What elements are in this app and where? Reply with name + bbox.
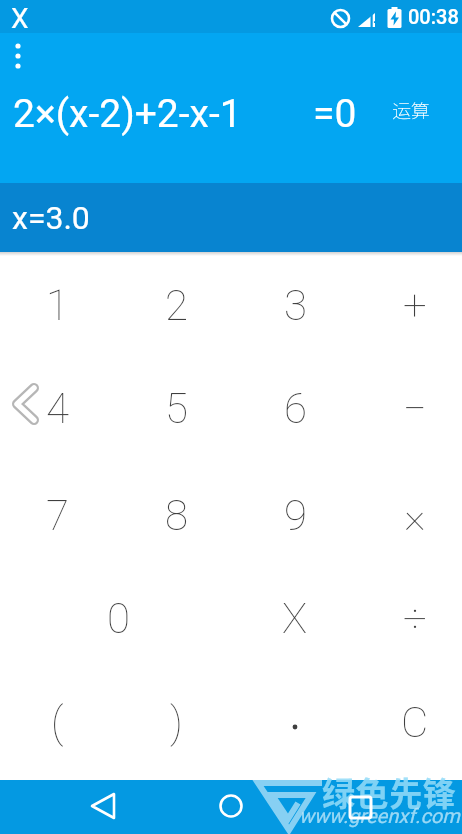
button[interactable]: ÷ — [381, 584, 449, 652]
button[interactable] — [80, 784, 126, 830]
button[interactable]: 5 — [142, 374, 210, 442]
staticText: X — [282, 594, 308, 643]
button[interactable] — [338, 784, 384, 830]
staticText: 4 — [46, 384, 69, 433]
staticText: 2 — [165, 281, 188, 330]
button[interactable]: × — [381, 481, 449, 549]
button[interactable] — [4, 38, 32, 78]
button[interactable] — [208, 784, 254, 830]
staticText: 00:38 — [408, 5, 459, 28]
button[interactable]: C — [381, 688, 449, 756]
button[interactable]: 6 — [261, 374, 329, 442]
staticText: 8 — [165, 491, 188, 540]
staticText: + — [403, 281, 427, 330]
staticText: 0 — [107, 594, 130, 643]
button[interactable]: ) — [142, 688, 210, 756]
staticText: ) — [170, 698, 183, 747]
staticText: 2×(x-2)+2-x-1 — [13, 91, 242, 137]
staticText: 5 — [165, 384, 188, 433]
button[interactable]: 运算 — [380, 90, 442, 130]
staticText: x=3.0 — [12, 199, 90, 237]
staticText: X — [11, 2, 29, 35]
button[interactable] — [261, 693, 329, 761]
button[interactable]: 1 — [23, 271, 91, 339]
staticText: 绿色先锋 — [322, 768, 457, 816]
button[interactable]: 0 — [84, 584, 152, 652]
staticText: 7 — [46, 491, 69, 540]
button[interactable]: ( — [23, 688, 91, 756]
staticText: 6 — [284, 384, 307, 433]
staticText: 3 — [284, 281, 307, 330]
staticText: 9 — [284, 491, 307, 540]
staticText: × — [404, 491, 426, 540]
staticText: =0 — [313, 91, 357, 137]
staticText: C — [401, 698, 429, 747]
staticText: − — [403, 384, 427, 433]
button[interactable]: 8 — [142, 481, 210, 549]
button[interactable]: 3 — [261, 271, 329, 339]
staticText: ( — [51, 698, 64, 747]
button[interactable]: + — [381, 271, 449, 339]
button[interactable]: 4 — [23, 374, 91, 442]
button[interactable]: − — [381, 374, 449, 442]
staticText: 运算 — [392, 96, 431, 124]
button[interactable]: 7 — [23, 481, 91, 549]
staticText: www.greenxf.com — [299, 804, 460, 827]
staticText: ÷ — [403, 594, 427, 643]
staticText: 1 — [46, 281, 69, 330]
button[interactable]: 9 — [261, 481, 329, 549]
button[interactable]: 2 — [142, 271, 210, 339]
button[interactable]: X — [261, 584, 329, 652]
